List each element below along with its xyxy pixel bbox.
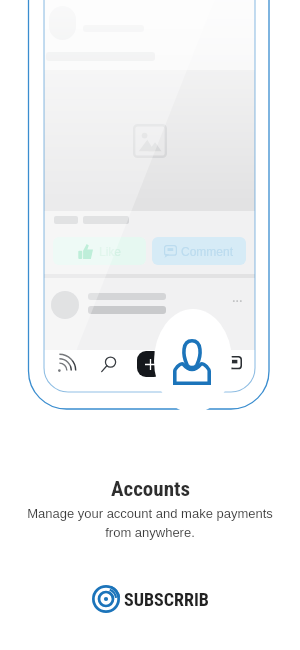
staticText: ... [232,288,243,306]
button[interactable]: Comment [152,237,246,265]
button[interactable]: Add [129,344,171,384]
staticText: Like [99,245,122,258]
button[interactable]: Like [53,237,146,265]
button[interactable]: Messages [213,344,255,384]
button[interactable]: Account [173,339,211,385]
button[interactable]: Profile [171,344,213,384]
button[interactable]: Search [87,344,129,384]
staticText: Comment [181,245,234,258]
staticText: SUBSCRRIB [124,589,209,610]
button[interactable]: Feed [44,344,87,384]
staticText: Accounts [111,477,190,502]
staticText: Manage your account and make payments fr… [24,506,276,540]
